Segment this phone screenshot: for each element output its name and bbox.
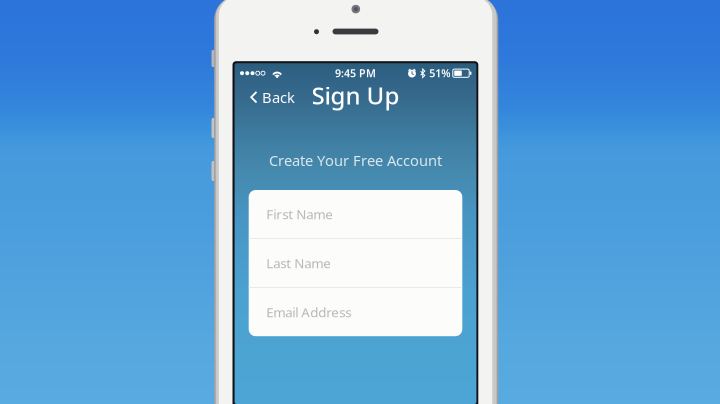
staticText: First Name <box>266 205 333 223</box>
staticText: Sign Up <box>311 79 399 111</box>
button[interactable]: Back <box>243 80 305 110</box>
staticText: Last Name <box>266 254 331 272</box>
staticText: 9:45 PM <box>335 66 376 80</box>
button[interactable]: Last Name <box>249 239 462 287</box>
staticText: Create Your Free Account <box>269 150 442 170</box>
staticText: 51% <box>429 66 450 80</box>
staticText: Back <box>262 87 295 107</box>
button[interactable]: First Name <box>249 190 462 238</box>
button[interactable]: Email Address <box>249 288 462 336</box>
staticText: Email Address <box>266 303 351 321</box>
